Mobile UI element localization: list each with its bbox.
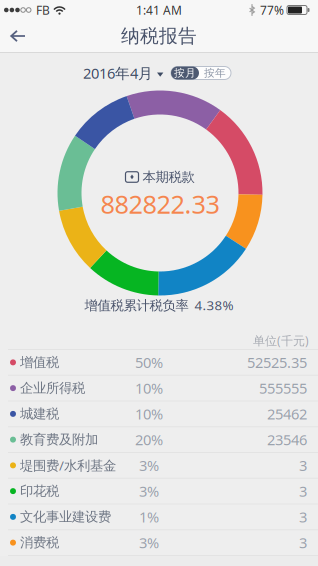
staticText: 52525.35 — [247, 353, 307, 372]
staticText: 50% — [135, 353, 163, 372]
staticText: 3 — [299, 507, 307, 527]
staticText: 堤围费/水利基金 — [20, 456, 116, 474]
staticText: 882822.33 — [100, 187, 219, 221]
button[interactable]: 2016年4月 — [83, 63, 164, 83]
staticText: 3 — [299, 456, 307, 475]
staticText: 单位(千元) — [253, 332, 309, 348]
staticText: 1% — [139, 507, 159, 527]
button[interactable]: 按月 — [171, 66, 199, 79]
staticText: 3 — [299, 481, 307, 501]
staticText: 印花税 — [20, 483, 59, 499]
staticText: 3% — [139, 456, 159, 475]
button[interactable]: Back — [0, 20, 38, 52]
staticText: 教育费及附加 — [20, 431, 98, 448]
staticText: 城建税 — [20, 406, 59, 422]
staticText: 10% — [135, 404, 163, 424]
staticText: 555555 — [259, 378, 307, 398]
staticText: 77% — [260, 2, 284, 18]
button[interactable]: 按年 — [199, 66, 231, 79]
staticText: 3% — [139, 481, 159, 501]
staticText: 23546 — [267, 430, 307, 449]
staticText: 纳税报告 — [121, 24, 197, 47]
staticText: 20% — [135, 430, 163, 449]
staticText: 3% — [139, 533, 159, 552]
staticText: 增值税累计税负率 4.38% — [84, 296, 233, 314]
staticText: 1:41 AM — [136, 2, 182, 18]
staticText: 25462 — [267, 404, 307, 424]
staticText: 企业所得税 — [20, 380, 85, 396]
staticText: 本期税款 — [142, 169, 194, 185]
staticText: 文化事业建设费 — [20, 509, 111, 525]
staticText: 消费税 — [20, 534, 59, 551]
staticText: 增值税 — [20, 354, 59, 371]
staticText: FB — [36, 2, 50, 18]
staticText: 按月 — [174, 66, 196, 79]
staticText: 2016年4月 — [83, 63, 153, 83]
staticText: 10% — [135, 378, 163, 398]
staticText: 3 — [299, 533, 307, 552]
staticText: 按年 — [204, 66, 226, 79]
